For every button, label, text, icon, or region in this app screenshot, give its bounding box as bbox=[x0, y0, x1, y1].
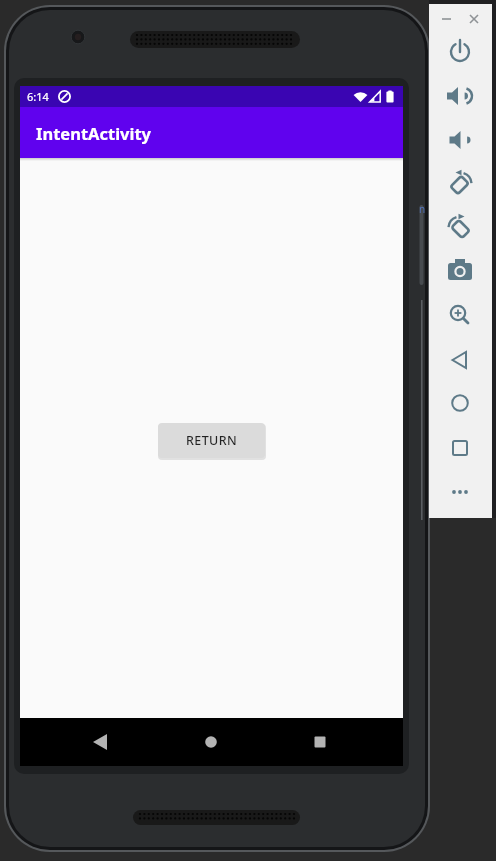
button[interactable] bbox=[442, 253, 478, 289]
staticText: 6:14 bbox=[27, 89, 49, 104]
button[interactable] bbox=[463, 12, 485, 28]
staticText: n bbox=[419, 202, 426, 216]
button[interactable] bbox=[442, 297, 478, 333]
button[interactable] bbox=[442, 34, 478, 70]
staticText: RETURN bbox=[186, 432, 238, 449]
button[interactable] bbox=[442, 210, 478, 246]
button[interactable] bbox=[306, 728, 334, 756]
button[interactable] bbox=[442, 386, 478, 422]
button[interactable] bbox=[442, 166, 478, 202]
staticText: IntentActivity bbox=[36, 122, 152, 144]
button[interactable] bbox=[86, 728, 114, 756]
button[interactable] bbox=[442, 78, 478, 114]
button[interactable] bbox=[442, 430, 478, 466]
button[interactable] bbox=[442, 122, 478, 158]
button[interactable] bbox=[197, 728, 225, 756]
button[interactable] bbox=[435, 12, 457, 28]
button[interactable]: RETURN bbox=[158, 423, 265, 458]
button[interactable] bbox=[442, 341, 478, 377]
button[interactable] bbox=[442, 474, 478, 510]
